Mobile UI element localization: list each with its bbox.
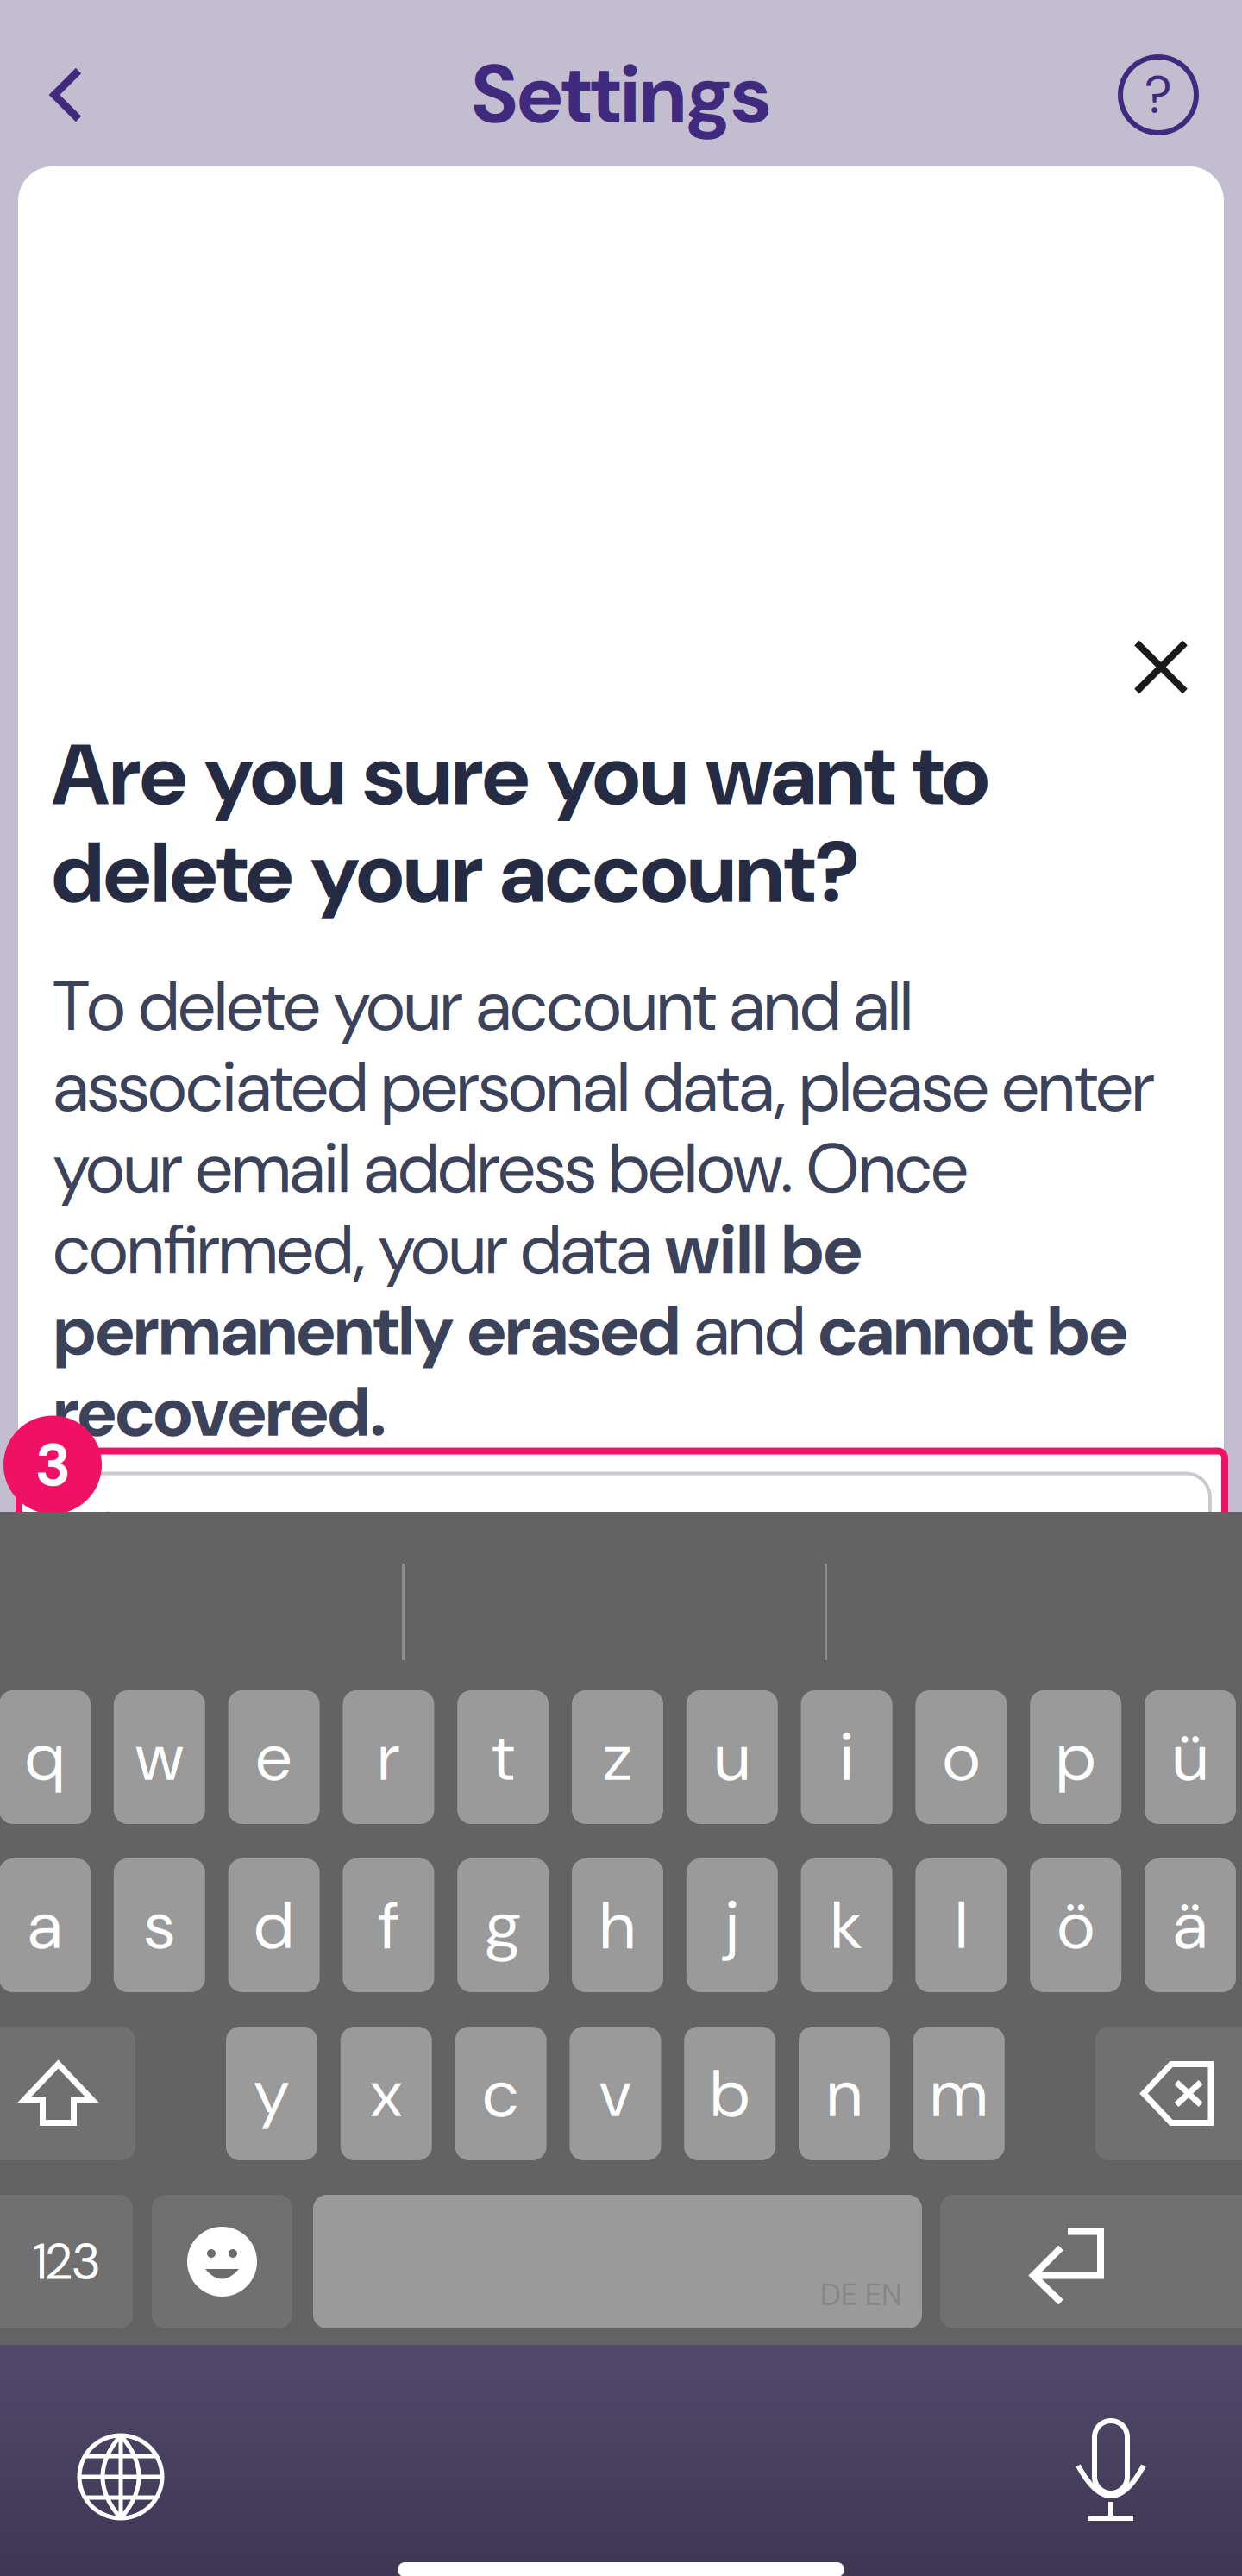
staticText: a xyxy=(28,1882,62,1969)
button[interactable]: Switch keyboard xyxy=(47,2404,194,2550)
staticText: b xyxy=(710,2050,749,2137)
staticText: t xyxy=(492,1714,514,1801)
staticText: o xyxy=(943,1714,979,1801)
staticText: i xyxy=(840,1714,853,1801)
staticText: k xyxy=(831,1882,862,1969)
staticText: w xyxy=(136,1714,183,1801)
staticText: j xyxy=(725,1882,739,1969)
staticText: c xyxy=(483,2050,518,2137)
staticText: Cancel xyxy=(107,1719,276,1794)
staticText: Are you sure you want to delete your acc… xyxy=(52,720,989,928)
staticText: d xyxy=(255,1882,293,1969)
staticText: Settings xyxy=(472,42,770,147)
staticText: g xyxy=(484,1882,522,1969)
staticText: p xyxy=(1056,1714,1095,1801)
staticText: Delete account xyxy=(802,1720,1168,1795)
staticText: s xyxy=(145,1882,174,1969)
staticText: n xyxy=(827,2050,862,2137)
staticText: ? xyxy=(1145,60,1172,129)
staticText: 4 xyxy=(704,1682,741,1760)
staticText: 123 xyxy=(33,2229,100,2295)
staticText: 3 xyxy=(36,1426,69,1504)
staticText: e xyxy=(256,1714,292,1801)
button[interactable]: Back xyxy=(2,39,131,151)
staticText: l xyxy=(956,1882,967,1969)
staticText: h xyxy=(600,1882,635,1969)
button[interactable]: Cancel xyxy=(55,1682,329,1830)
staticText: x xyxy=(371,2050,402,2137)
staticText: To delete your account and all associate… xyxy=(53,961,1154,1457)
staticText: v xyxy=(599,2050,631,2137)
button[interactable]: Delete account xyxy=(754,1683,1216,1831)
staticText: r xyxy=(378,1714,399,1801)
staticText: DE EN xyxy=(820,2275,902,2314)
staticText: z xyxy=(603,1714,632,1801)
staticText: ü xyxy=(1173,1714,1207,1801)
staticText: y xyxy=(254,2050,289,2137)
staticText: m xyxy=(931,2050,987,2137)
button[interactable]: Dictate xyxy=(1038,2398,1184,2545)
button[interactable]: Close xyxy=(1101,611,1221,723)
staticText: ä xyxy=(1173,1882,1207,1969)
staticText: u xyxy=(715,1714,749,1801)
staticText: ö xyxy=(1058,1882,1094,1969)
staticText: f xyxy=(379,1882,398,1969)
button[interactable]: Help xyxy=(1094,39,1223,151)
staticText: q xyxy=(25,1714,64,1801)
